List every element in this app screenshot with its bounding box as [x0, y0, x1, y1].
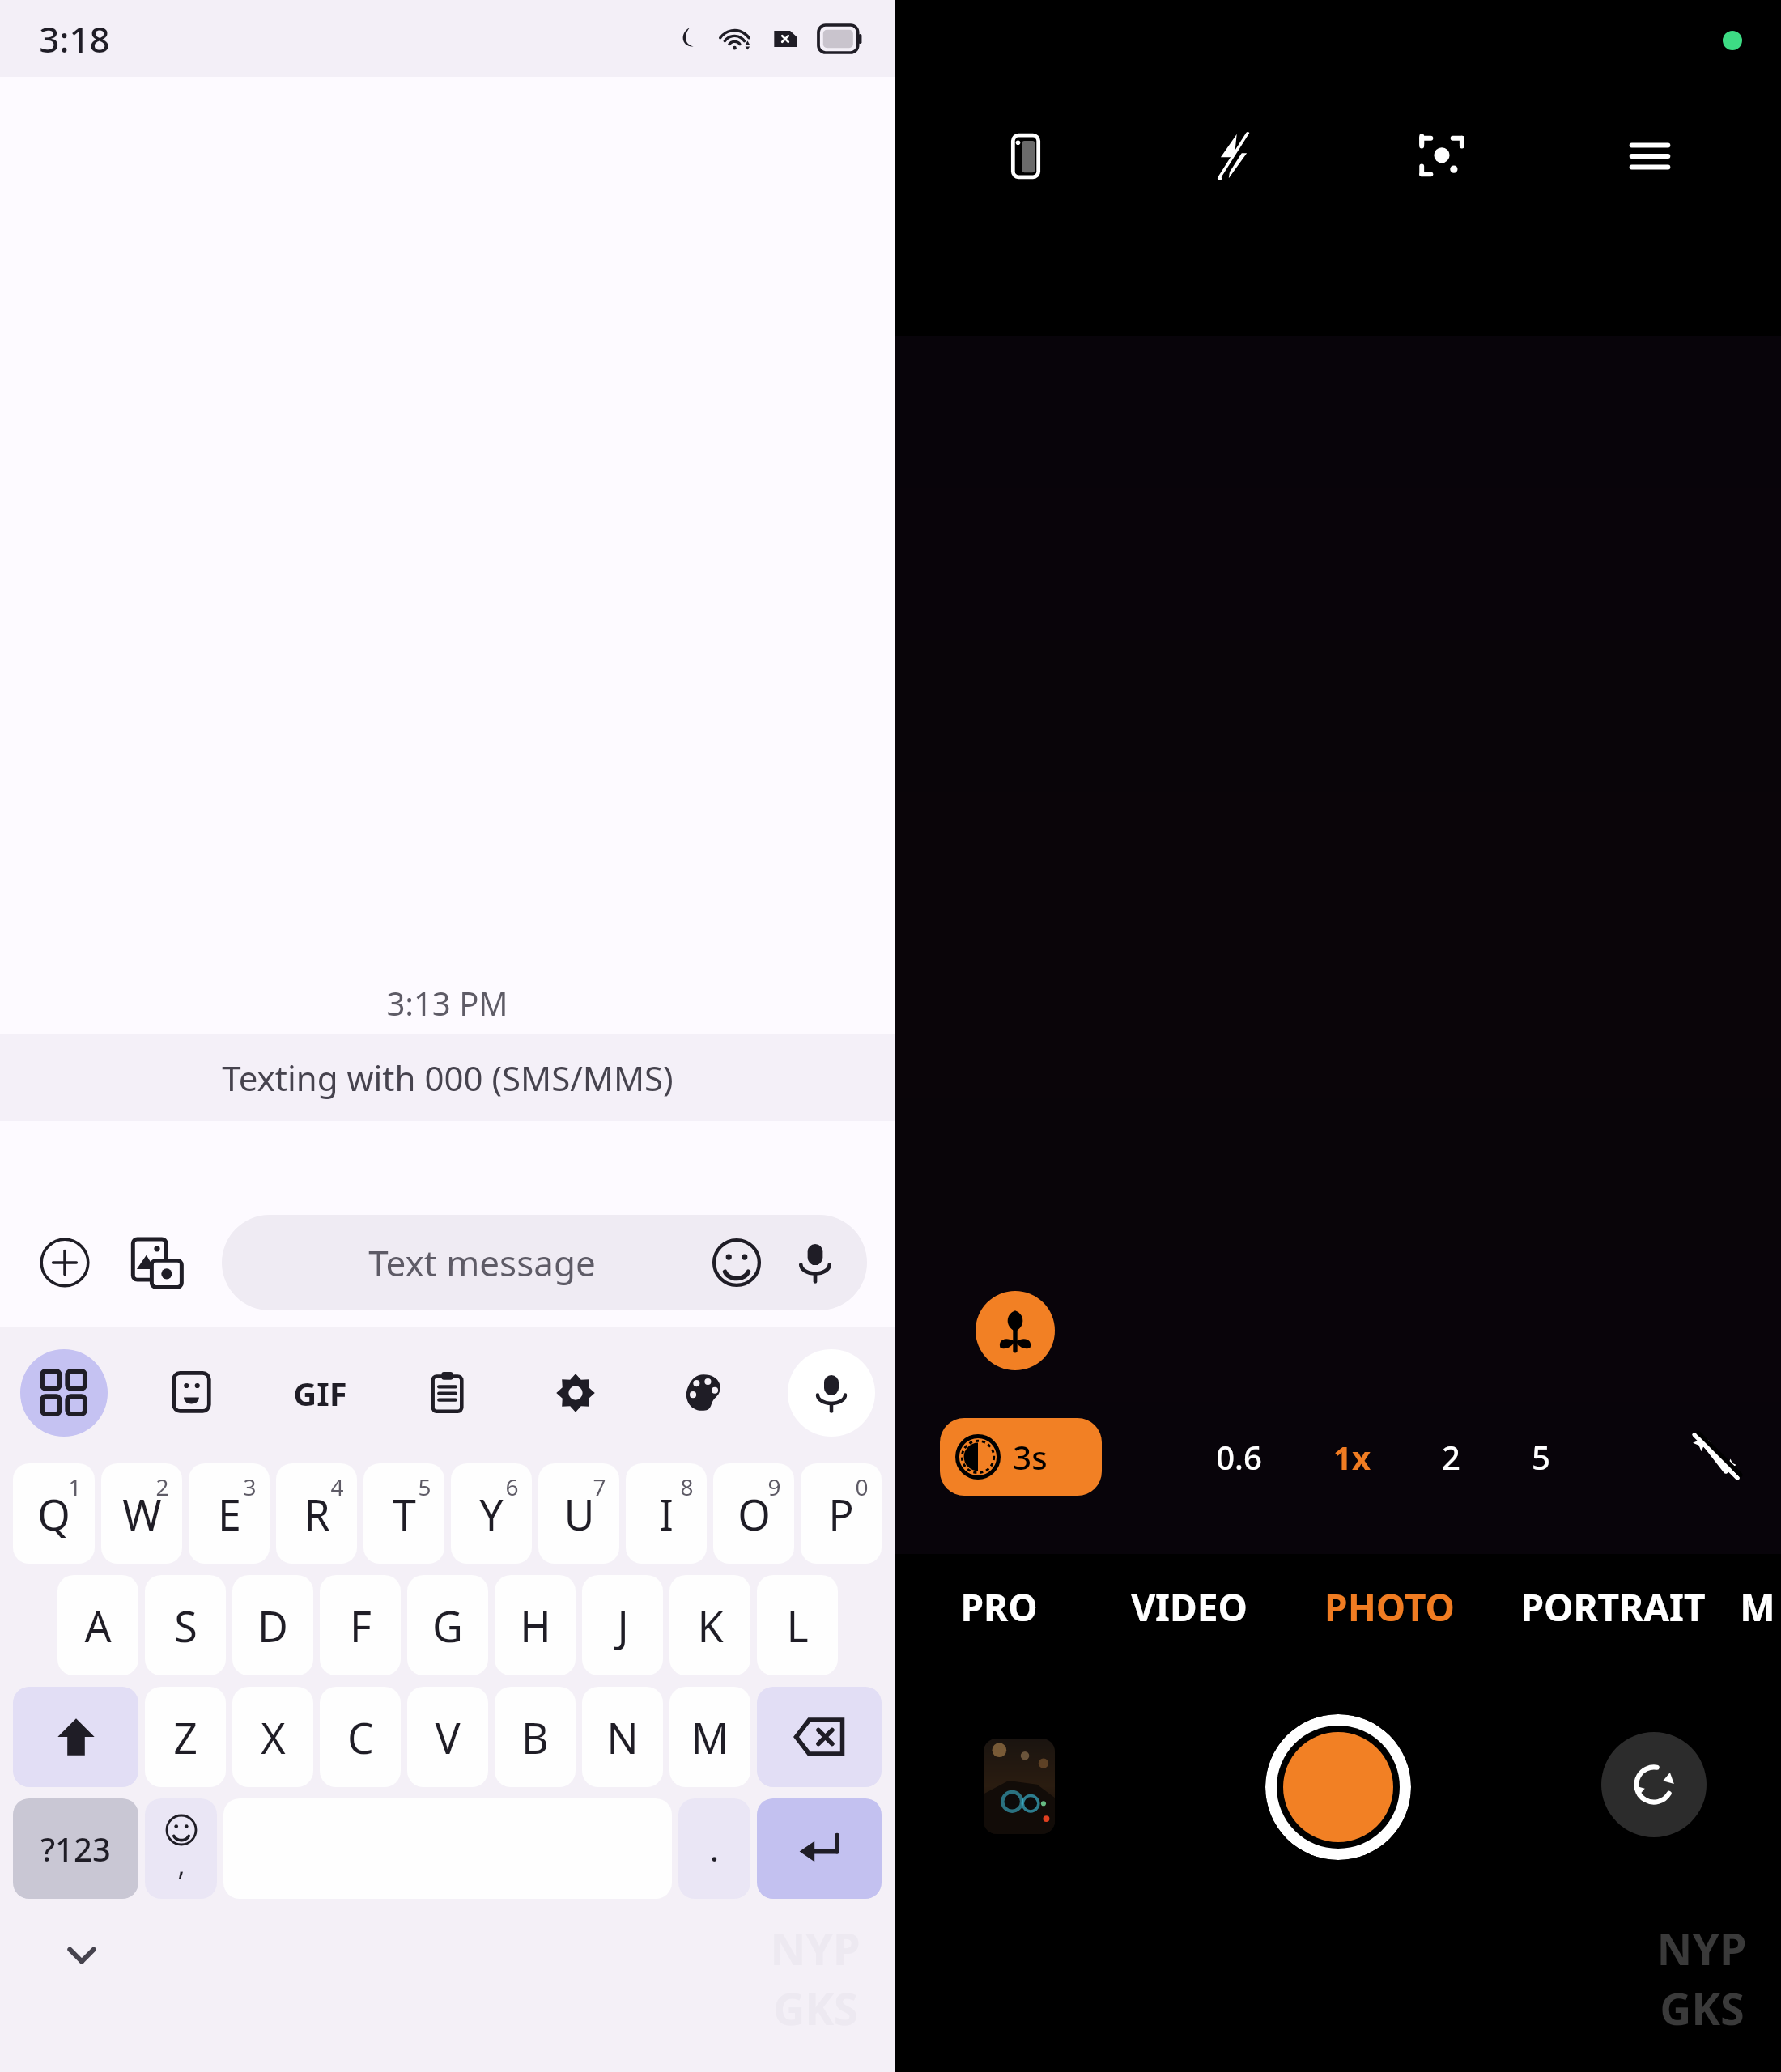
button[interactable]: W [101, 1463, 182, 1564]
staticText: 3:13 PM [386, 981, 508, 1025]
staticText: F [350, 1597, 372, 1654]
staticText: 3s [1013, 1435, 1048, 1479]
button[interactable]: PRO [906, 1562, 1091, 1651]
button[interactable]: Keyboard modes [20, 1349, 108, 1437]
button[interactable]: S [145, 1575, 226, 1675]
button[interactable]: U [538, 1463, 619, 1564]
staticText: L [786, 1597, 809, 1654]
staticText: Q [37, 1485, 70, 1543]
staticText: 2 [1442, 1435, 1460, 1479]
staticText: Texting with 000 (SMS/MMS) [222, 1055, 674, 1101]
button[interactable]: M [669, 1687, 750, 1787]
staticText: I [659, 1485, 674, 1543]
button[interactable]: 1x [1322, 1427, 1382, 1487]
button[interactable]: Text message [222, 1215, 867, 1310]
button[interactable]: D [232, 1575, 313, 1675]
button[interactable]: Flash off [1129, 104, 1337, 209]
button[interactable]: R [276, 1463, 357, 1564]
button[interactable]: 5 [1520, 1427, 1562, 1487]
button[interactable]: V [407, 1687, 488, 1787]
button[interactable]: E [189, 1463, 270, 1564]
button[interactable]: Emoji keyboard [145, 1798, 217, 1899]
button[interactable]: X [232, 1687, 313, 1787]
staticText: S [174, 1597, 198, 1654]
button[interactable]: Switch camera [1601, 1732, 1707, 1837]
button[interactable]: F [320, 1575, 401, 1675]
staticText: VIDEO [1131, 1582, 1248, 1633]
button[interactable]: K [669, 1575, 750, 1675]
staticText: 9 [767, 1471, 781, 1502]
staticText: 1 [68, 1471, 82, 1502]
button[interactable]: Macro mode [976, 1291, 1055, 1370]
button[interactable]: Add attachment [28, 1225, 102, 1300]
staticText: B [521, 1709, 549, 1766]
button[interactable]: A [57, 1575, 138, 1675]
button[interactable]: 2 [1430, 1427, 1472, 1487]
staticText: K [697, 1597, 724, 1654]
button[interactable]: Stickers [148, 1349, 236, 1437]
button[interactable]: Z [145, 1687, 226, 1787]
button[interactable]: Aspect ratio [922, 104, 1129, 209]
button[interactable]: P [801, 1463, 882, 1564]
staticText: U [563, 1485, 595, 1543]
button[interactable]: G [407, 1575, 488, 1675]
staticText: 0.6 [1216, 1435, 1262, 1479]
button[interactable]: O [713, 1463, 794, 1564]
button[interactable]: Clipboard [404, 1349, 491, 1437]
button[interactable]: Last photo [984, 1739, 1055, 1834]
button[interactable]: Gallery and camera [120, 1225, 194, 1300]
button[interactable]: Shutter [1265, 1714, 1411, 1860]
staticText: 7 [593, 1471, 606, 1502]
button[interactable]: L [757, 1575, 838, 1675]
staticText: P [828, 1485, 854, 1543]
staticText: GKS [773, 1978, 858, 2038]
button[interactable]: J [582, 1575, 663, 1675]
button[interactable]: Shift [13, 1687, 138, 1787]
button[interactable]: I [626, 1463, 707, 1564]
staticText: C [347, 1709, 374, 1766]
button[interactable]: T [363, 1463, 444, 1564]
staticText: Z [173, 1709, 198, 1766]
staticText: PHOTO [1324, 1582, 1455, 1633]
button[interactable]: GIF [276, 1349, 363, 1437]
button[interactable]: Enter [757, 1798, 882, 1899]
button[interactable]: Hide keyboard [63, 1936, 100, 1973]
staticText: 3:18 [39, 15, 110, 63]
staticText: GKS [1660, 1978, 1745, 2038]
button[interactable]: 0.6 [1205, 1427, 1273, 1487]
staticText: T [393, 1485, 416, 1543]
button[interactable]: . [678, 1798, 750, 1899]
button[interactable]: B [495, 1687, 576, 1787]
staticText: A [84, 1597, 112, 1654]
button[interactable]: Y [451, 1463, 532, 1564]
staticText: R [304, 1485, 330, 1543]
staticText: , [177, 1846, 185, 1883]
button[interactable]: Timer 3 seconds [940, 1418, 1102, 1496]
staticText: 5 [418, 1471, 431, 1502]
staticText: GIF [293, 1371, 347, 1415]
button[interactable]: ?123 [13, 1798, 138, 1899]
button[interactable]: PHOTO [1287, 1562, 1492, 1651]
button[interactable]: Settings [532, 1349, 619, 1437]
button[interactable]: AI scene [1337, 104, 1545, 209]
button[interactable]: Backspace [757, 1687, 882, 1787]
button[interactable]: Magic effects off [1681, 1422, 1750, 1492]
staticText: E [218, 1485, 241, 1543]
button[interactable]: VIDEO [1091, 1562, 1287, 1651]
button[interactable]: C [320, 1687, 401, 1787]
staticText: NYP [1656, 1918, 1747, 1978]
staticText: N [606, 1709, 639, 1766]
button[interactable]: Voice input [788, 1349, 875, 1437]
button[interactable]: H [495, 1575, 576, 1675]
staticText: V [435, 1709, 461, 1766]
button[interactable]: PORTRAIT [1492, 1562, 1734, 1651]
button[interactable]: Q [13, 1463, 95, 1564]
staticText: 4 [330, 1471, 344, 1502]
button[interactable]: More settings [1545, 104, 1753, 209]
button[interactable]: Themes [660, 1349, 747, 1437]
staticText: J [617, 1597, 629, 1654]
button[interactable]: N [582, 1687, 663, 1787]
button[interactable]: M [1734, 1562, 1781, 1651]
